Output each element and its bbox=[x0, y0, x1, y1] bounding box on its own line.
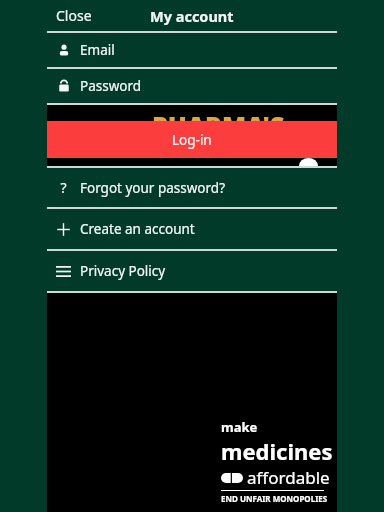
other: Email bbox=[47, 43, 80, 57]
staticText: PHARMA'S bbox=[152, 108, 285, 142]
staticText: My account bbox=[150, 6, 234, 26]
button[interactable]: Password bbox=[47, 69, 337, 103]
other: Password bbox=[47, 79, 80, 93]
staticText: Create an account bbox=[80, 220, 195, 238]
staticText: Email bbox=[80, 41, 115, 59]
staticText: Forgot your password? bbox=[80, 179, 226, 197]
staticText: END UNFAIR MONOPOLIES bbox=[221, 493, 328, 504]
staticText: Privacy Policy bbox=[80, 262, 166, 280]
staticText: Log-in bbox=[172, 131, 212, 149]
staticText: ? bbox=[60, 178, 67, 197]
staticText: make bbox=[221, 418, 258, 436]
button[interactable]: Email bbox=[47, 33, 337, 67]
button[interactable]: Privacy Policy bbox=[47, 251, 337, 291]
staticText: Password bbox=[80, 77, 142, 95]
other: Forgot your password bbox=[47, 178, 80, 197]
staticText: medicines bbox=[221, 436, 333, 466]
other: Privacy Policy bbox=[47, 266, 80, 277]
button[interactable]: Create an account bbox=[47, 209, 337, 249]
other: Create an account bbox=[47, 222, 80, 237]
button[interactable]: Close bbox=[47, 2, 100, 29]
button[interactable]: Forgot your password bbox=[47, 168, 337, 207]
staticText: Close bbox=[56, 6, 92, 25]
button[interactable]: Log-in bbox=[47, 121, 337, 158]
staticText: affordable bbox=[247, 466, 330, 489]
